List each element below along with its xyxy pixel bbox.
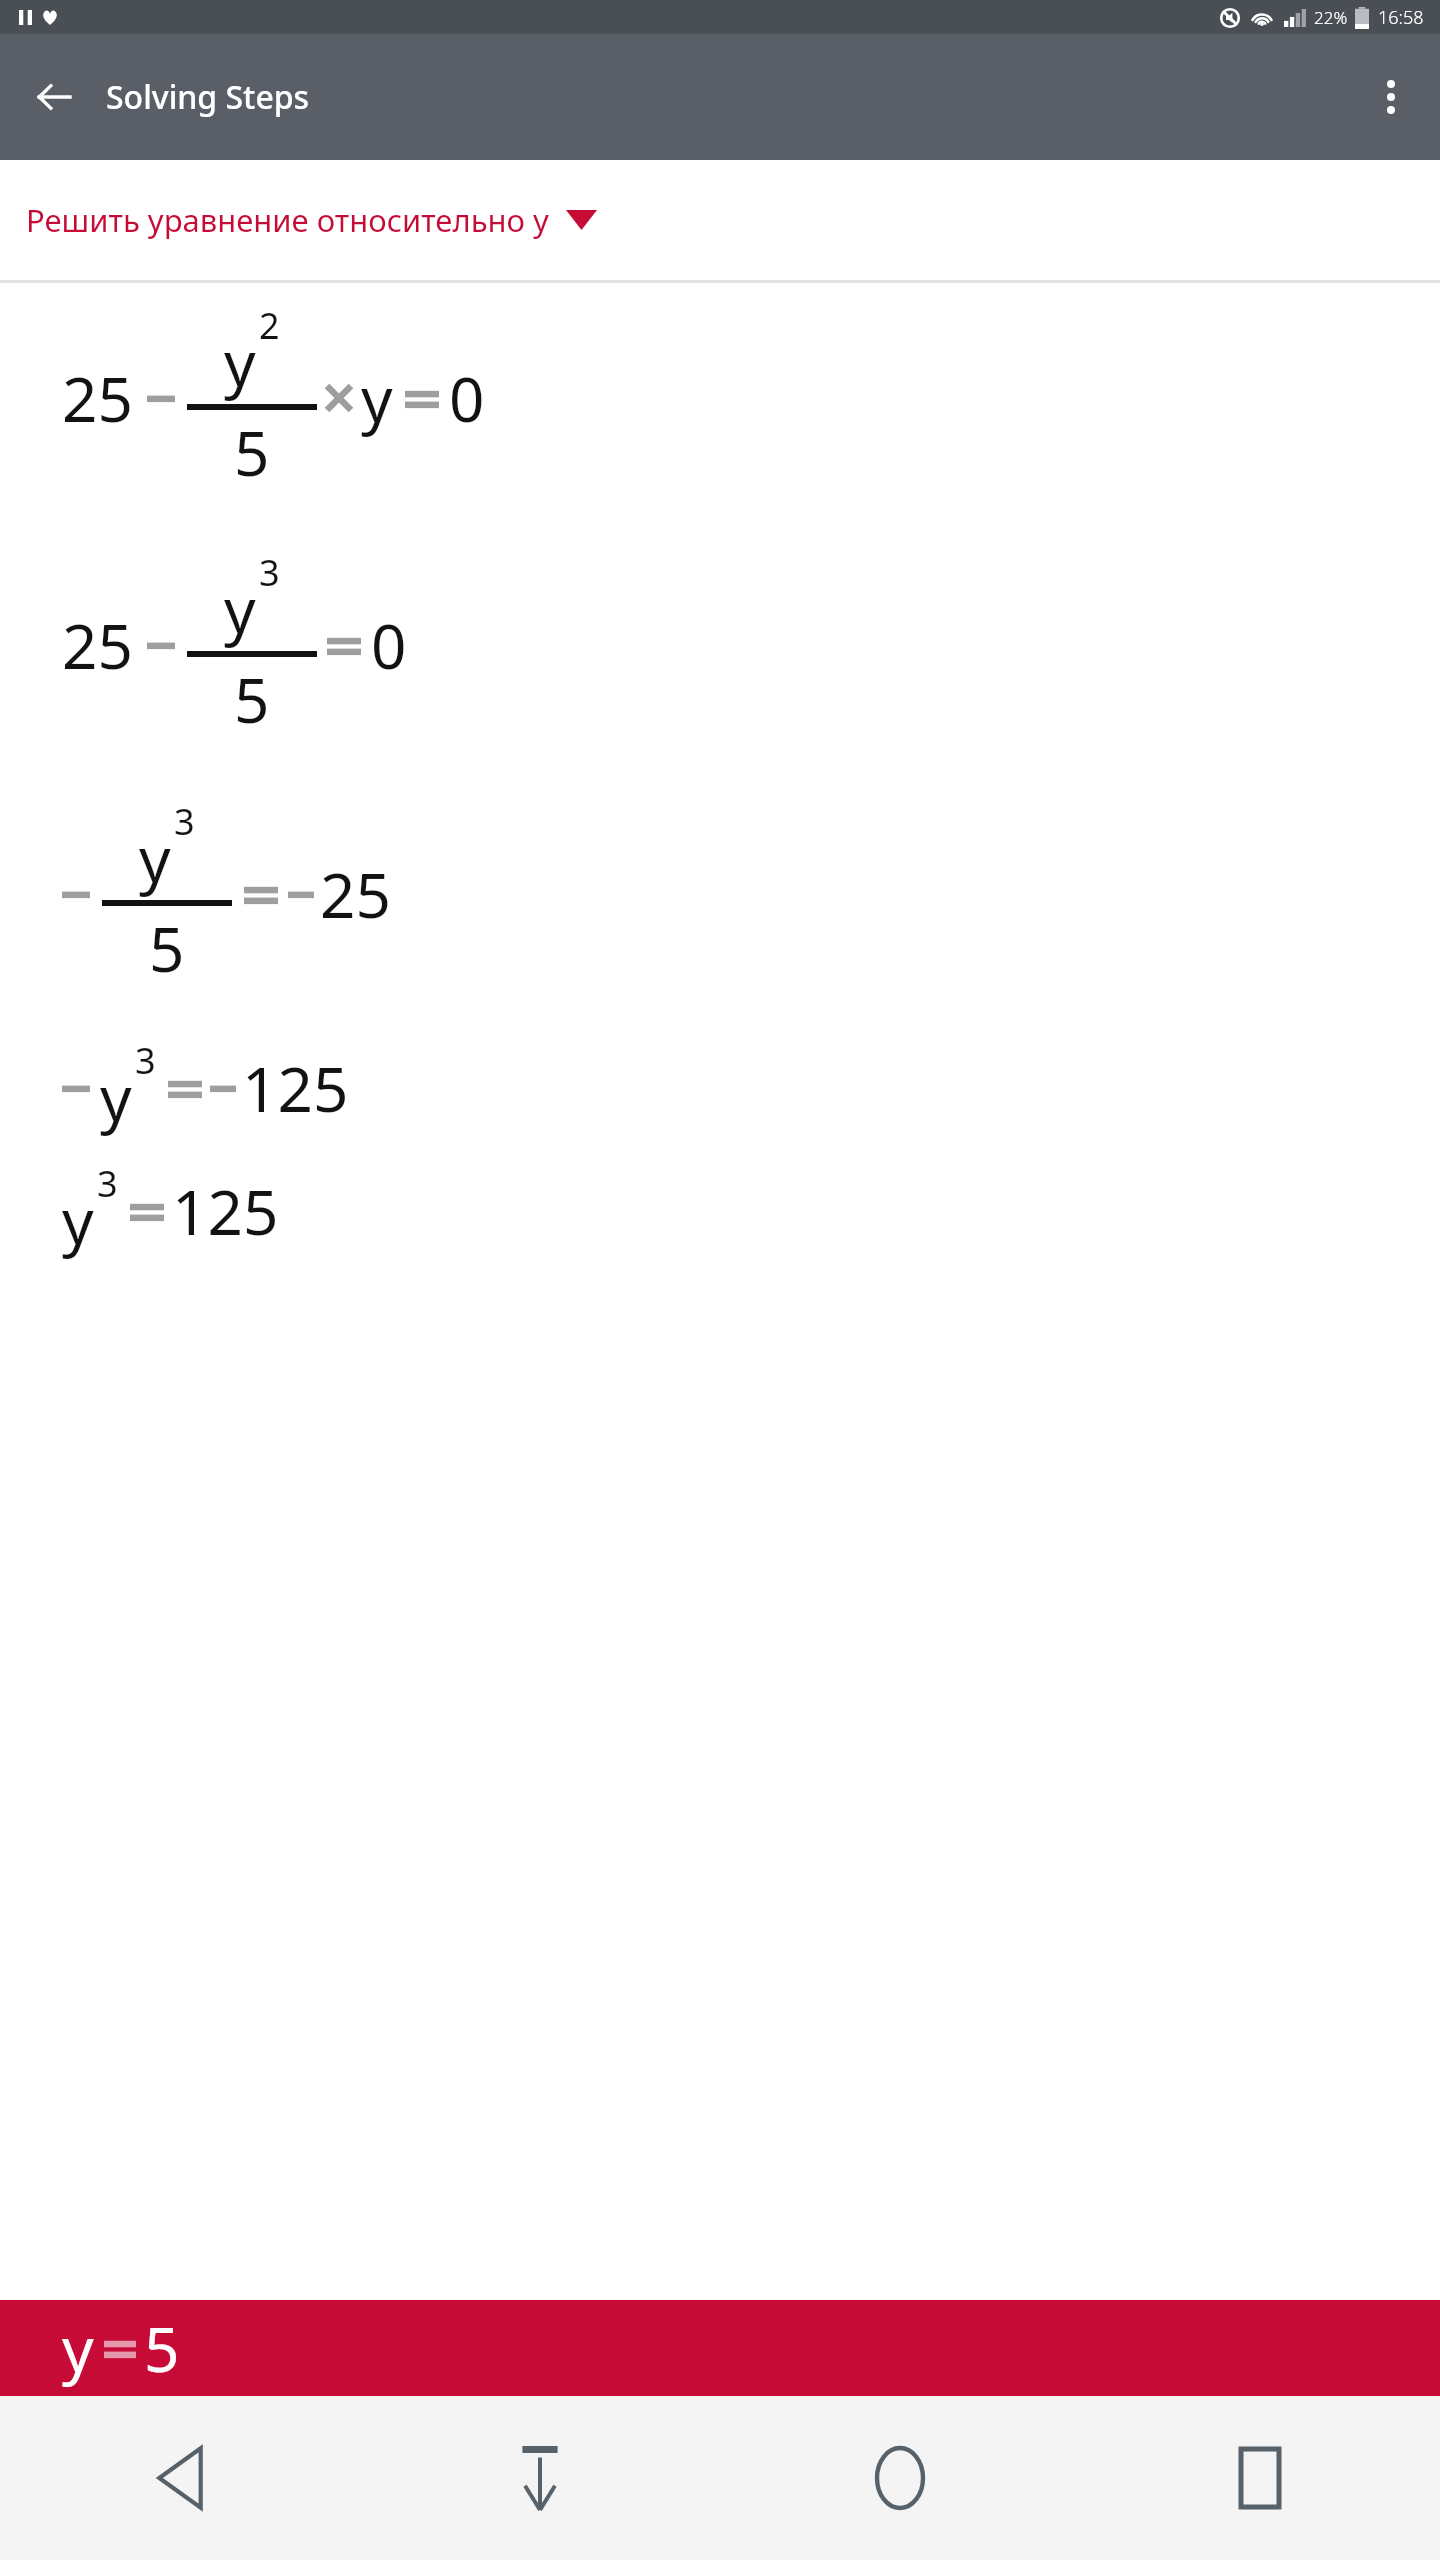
staticText: 3 <box>135 1036 156 1085</box>
staticText: y <box>139 816 171 900</box>
button[interactable]: Решить уравнение относительно y <box>0 160 1440 280</box>
staticText: 5 <box>234 657 270 741</box>
staticText: 22% <box>1314 6 1348 29</box>
staticText: 3 <box>174 797 195 846</box>
staticText: y <box>224 567 256 651</box>
staticText: 125 <box>242 1046 349 1130</box>
staticText: 125 <box>172 1169 279 1253</box>
staticText: 5 <box>149 906 185 990</box>
staticText: y <box>62 2306 94 2390</box>
button[interactable]: y <box>0 2300 1440 2396</box>
button[interactable]: y <box>0 797 1440 990</box>
staticText: 25 <box>62 603 133 687</box>
staticText: 16:58 <box>1378 5 1424 30</box>
button[interactable]: Home <box>720 2396 1080 2560</box>
button[interactable]: Back <box>0 2396 360 2560</box>
staticText: y <box>100 1055 132 1139</box>
staticText: 0 <box>449 356 485 440</box>
staticText: 25 <box>62 356 133 440</box>
staticText: 2 <box>259 301 280 350</box>
staticText: 5 <box>144 2306 180 2390</box>
button[interactable]: y <box>0 1036 1440 1139</box>
button[interactable]: Recents <box>1080 2396 1440 2560</box>
staticText: y <box>62 1178 94 1262</box>
staticText: 0 <box>371 603 407 687</box>
staticText: 3 <box>259 548 280 597</box>
staticText: 25 <box>320 852 391 936</box>
button[interactable]: 25 <box>0 301 1440 494</box>
button[interactable]: Hide keyboard <box>360 2396 720 2560</box>
button[interactable]: Back <box>22 65 86 129</box>
staticText: 5 <box>234 410 270 494</box>
staticText: Решить уравнение относительно y <box>26 199 549 241</box>
staticText: 3 <box>97 1159 118 1208</box>
button[interactable]: More options <box>1360 66 1422 128</box>
button[interactable]: 25 <box>0 548 1440 741</box>
staticText: y <box>224 320 256 404</box>
button[interactable]: y <box>0 1159 1440 1262</box>
staticText: Solving Steps <box>106 75 310 119</box>
staticText: y <box>361 356 393 440</box>
